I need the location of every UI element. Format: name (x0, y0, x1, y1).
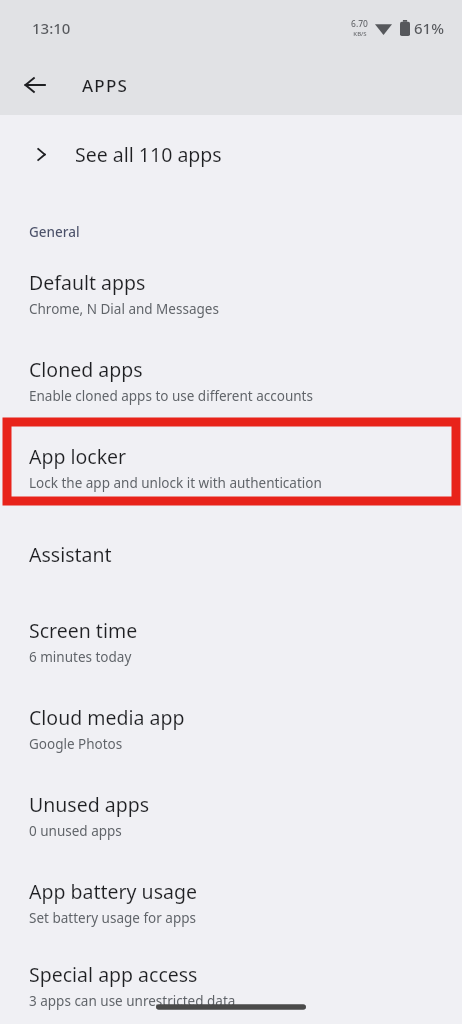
staticText: Unused apps (29, 791, 150, 818)
button[interactable]: Unused apps (0, 772, 462, 859)
button[interactable]: Cloned apps (0, 337, 462, 424)
staticText: Default apps (29, 269, 146, 296)
staticText: 0 unused apps (29, 822, 122, 840)
staticText: Assistant (29, 541, 112, 568)
staticText: APPS (82, 74, 129, 97)
button[interactable]: Assistant (0, 511, 462, 598)
staticText: Cloud media app (29, 704, 185, 731)
staticText: 3 apps can use unrestricted data (29, 992, 236, 1010)
staticText: Cloned apps (29, 356, 143, 383)
staticText: KB/S (353, 30, 367, 38)
staticText: See all 110 apps (75, 141, 222, 168)
staticText: App locker (29, 443, 127, 470)
button[interactable]: Cloud media app (0, 685, 462, 772)
staticText: Chrome, N Dial and Messages (29, 300, 219, 318)
button[interactable]: Default apps (0, 250, 462, 337)
staticText: 13:10 (32, 18, 71, 38)
staticText: 6 minutes today (29, 648, 132, 666)
button[interactable]: Back (14, 64, 56, 106)
staticText: Lock the app and unlock it with authenti… (29, 474, 322, 492)
staticText: 6.70 (351, 18, 368, 30)
staticText: Google Photos (29, 735, 123, 753)
staticText: Set battery usage for apps (29, 909, 196, 927)
staticText: App battery usage (29, 878, 197, 905)
button[interactable]: Special app access (0, 946, 462, 1024)
staticText: Screen time (29, 617, 138, 644)
staticText: 61% (414, 18, 444, 38)
staticText: Enable cloned apps to use different acco… (29, 387, 313, 405)
button[interactable]: App battery usage (0, 859, 462, 946)
staticText: General (29, 223, 80, 241)
staticText: Special app access (29, 961, 198, 988)
button[interactable]: See all 110 apps (0, 115, 462, 193)
button[interactable]: App locker (0, 424, 462, 511)
button[interactable]: Screen time (0, 598, 462, 685)
